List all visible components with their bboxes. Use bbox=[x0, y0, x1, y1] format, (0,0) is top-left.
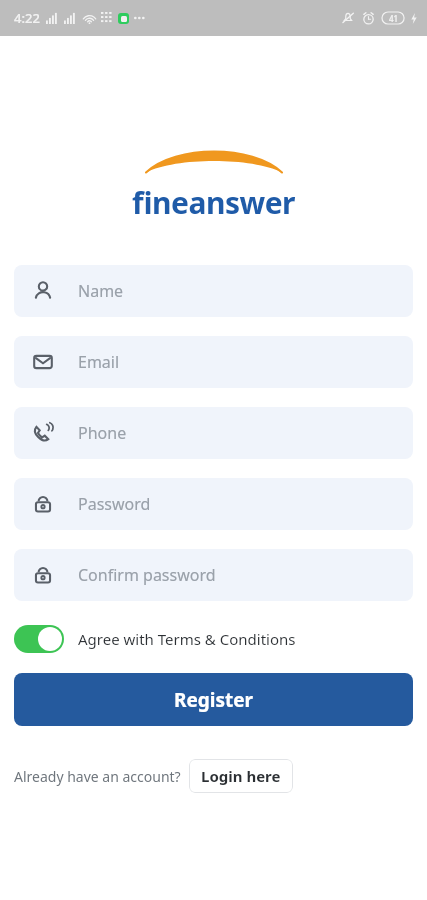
staticText: Name bbox=[78, 280, 124, 302]
button[interactable]: Login here bbox=[189, 759, 293, 793]
button[interactable]: Agree with Terms and Conditions toggle bbox=[14, 625, 413, 653]
staticText: Password bbox=[78, 493, 151, 515]
button[interactable]: Confirm password bbox=[14, 549, 413, 601]
button[interactable]: Name bbox=[14, 265, 413, 317]
button[interactable]: Password bbox=[14, 478, 413, 530]
staticText: Login here bbox=[201, 766, 281, 786]
staticText: Agree with Terms & Conditions bbox=[78, 629, 296, 649]
button[interactable]: Phone bbox=[14, 407, 413, 459]
button[interactable]: Email bbox=[14, 336, 413, 388]
staticText: 41 bbox=[389, 13, 399, 24]
staticText: Confirm password bbox=[78, 564, 216, 586]
staticText: Register bbox=[174, 687, 254, 713]
other: Agree with Terms and Conditions toggle bbox=[14, 625, 64, 653]
staticText: 4:22 bbox=[14, 9, 40, 27]
button[interactable]: Register bbox=[14, 673, 413, 726]
staticText: Already have an account? bbox=[14, 767, 181, 786]
staticText: fineanswer bbox=[132, 182, 295, 223]
staticText: Phone bbox=[78, 422, 127, 444]
staticText: Email bbox=[78, 351, 120, 373]
